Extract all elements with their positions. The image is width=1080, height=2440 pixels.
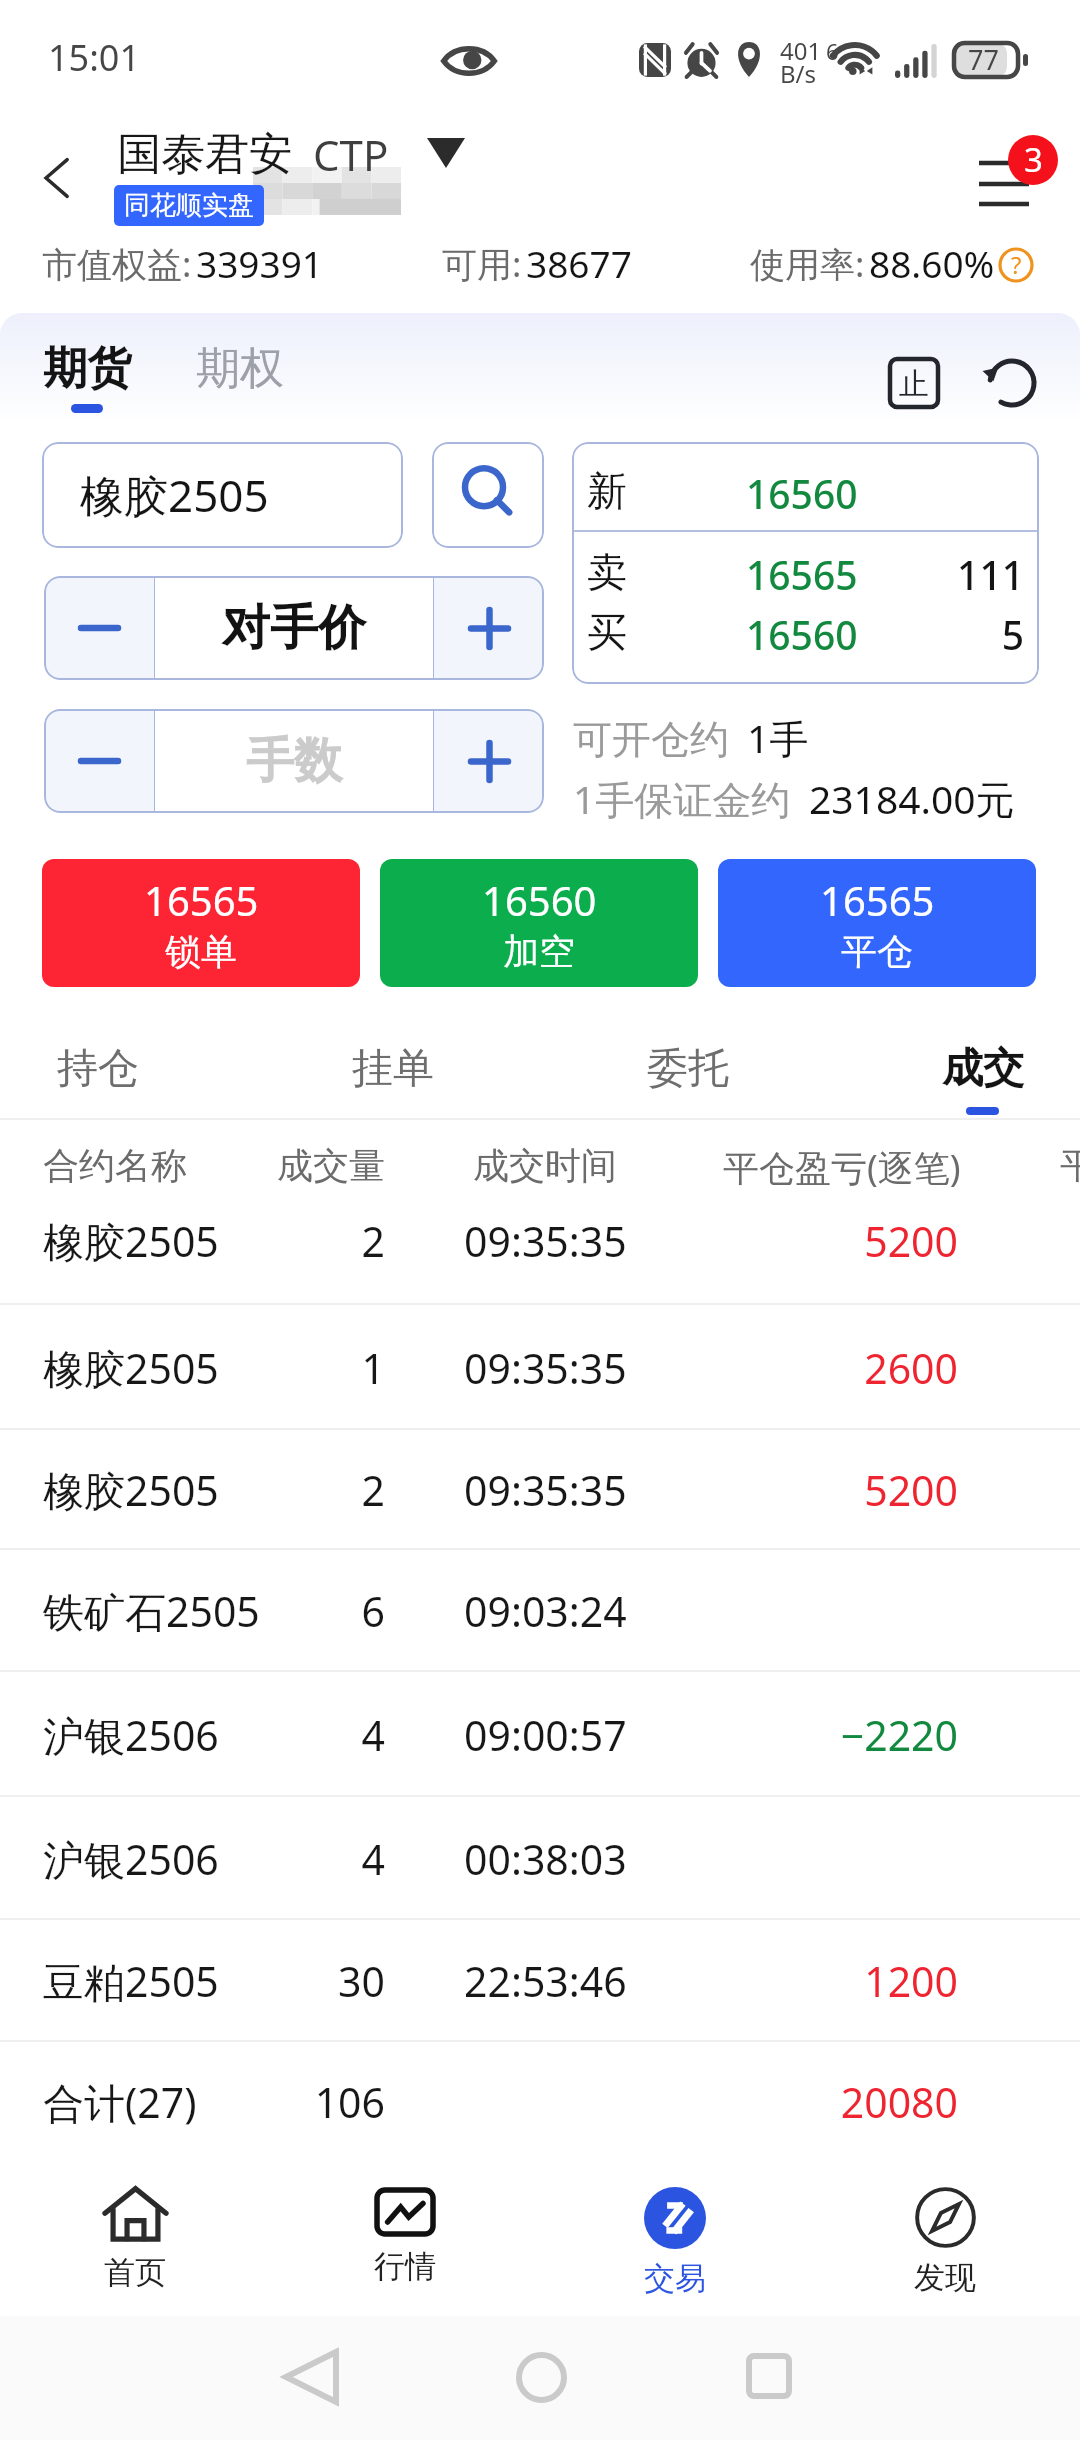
staticText: 2 xyxy=(232,1213,385,1269)
staticText: 23184.00元 xyxy=(809,772,1015,825)
staticText: 平 xyxy=(1060,1143,1080,1188)
staticText: 09:35:35 xyxy=(464,1462,627,1518)
staticText: 09:35:35 xyxy=(464,1213,627,1269)
button[interactable] xyxy=(44,576,154,680)
button[interactable]: Menu xyxy=(960,128,1070,220)
button[interactable]: 铁矿石2505 xyxy=(0,1550,1080,1672)
staticText: 新 xyxy=(587,466,627,516)
staticText: 成交 xyxy=(942,1043,1024,1095)
staticText: 持仓 xyxy=(57,1043,139,1095)
staticText: 橡胶2505 xyxy=(43,1213,219,1269)
staticText: 1200 xyxy=(700,1953,958,2009)
button[interactable]: 行情 xyxy=(270,2157,540,2316)
button[interactable]: 手数 xyxy=(155,709,433,813)
button[interactable]: 16560 xyxy=(380,859,698,987)
staticText: 成交量 xyxy=(277,1143,385,1188)
staticText: 可用: xyxy=(442,240,522,288)
staticText: CTP xyxy=(313,126,389,183)
staticText: 沪银2506 xyxy=(43,1707,219,1763)
staticText: 16560 xyxy=(746,608,858,661)
staticText: 4 xyxy=(232,1831,385,1887)
staticText: 手数 xyxy=(246,731,342,791)
button[interactable]: Refresh xyxy=(980,351,1044,415)
staticText: 卖 xyxy=(587,547,627,597)
button[interactable] xyxy=(44,709,154,813)
button[interactable]: 挂单 xyxy=(295,1018,490,1120)
staticText: 合约名称 xyxy=(43,1143,187,1188)
button[interactable]: 橡胶2505 xyxy=(0,1207,1080,1305)
button[interactable]: 橡胶2505 xyxy=(42,442,403,548)
staticText: 可开仓约 xyxy=(573,715,729,764)
button[interactable] xyxy=(434,576,544,680)
button[interactable]: 首页 xyxy=(0,2157,270,2316)
staticText: 16560 xyxy=(746,467,858,520)
staticText: 沪银2506 xyxy=(43,1831,219,1887)
staticText: 1 xyxy=(232,1340,385,1396)
staticText: 豆粕2505 xyxy=(43,1953,219,2009)
staticText: 1手 xyxy=(747,711,809,764)
staticText: ? xyxy=(1011,248,1022,281)
button[interactable]: Stop order xyxy=(886,355,942,411)
staticText: 首页 xyxy=(104,2253,166,2292)
button[interactable]: 16565 xyxy=(718,859,1036,987)
staticText: 买 xyxy=(587,607,627,657)
button[interactable]: 沪银2506 xyxy=(0,1672,1080,1797)
staticText: 106 xyxy=(232,2074,385,2130)
staticText: 2 xyxy=(232,1462,385,1518)
button[interactable]: 合计(27) xyxy=(0,2042,1080,2162)
staticText: 6 xyxy=(826,36,839,66)
staticText: 339391 xyxy=(196,238,323,288)
staticText: 3 xyxy=(1024,137,1043,182)
staticText: 5 xyxy=(572,608,1024,661)
button[interactable]: 期货 xyxy=(43,341,131,413)
staticText: 16565 xyxy=(746,548,858,601)
staticText: 16565 xyxy=(820,873,935,927)
staticText: 401 xyxy=(780,34,822,67)
button[interactable]: 橡胶2505 xyxy=(0,1305,1080,1430)
button[interactable]: 对手价 xyxy=(155,576,433,680)
staticText: 橡胶2505 xyxy=(80,465,269,525)
staticText: 合计(27) xyxy=(43,2074,197,2130)
button[interactable]: 持仓 xyxy=(0,1018,195,1120)
staticText: 橡胶2505 xyxy=(43,1462,219,1518)
staticText: 09:00:57 xyxy=(464,1707,627,1763)
staticText: 88.60% xyxy=(869,238,995,288)
button[interactable] xyxy=(434,709,544,813)
button[interactable]: 16565 xyxy=(42,859,360,987)
staticText: 挂单 xyxy=(352,1043,434,1095)
button[interactable]: Back xyxy=(18,138,98,218)
staticText: 15:01 xyxy=(48,33,141,82)
staticText: −2220 xyxy=(700,1707,958,1763)
staticText: 加空 xyxy=(503,929,575,974)
staticText: 期权 xyxy=(196,341,284,396)
staticText: 平仓 xyxy=(841,929,913,974)
staticText: 交易 xyxy=(644,2259,706,2298)
staticText: 00:38:03 xyxy=(464,1831,627,1887)
button[interactable]: 委托 xyxy=(590,1018,785,1120)
staticText: 使用率: xyxy=(750,240,865,288)
button[interactable]: Search xyxy=(432,442,544,548)
staticText: 09:03:24 xyxy=(464,1583,627,1639)
button[interactable]: 豆粕2505 xyxy=(0,1920,1080,2042)
staticText: 77 xyxy=(968,41,999,78)
staticText: 4 xyxy=(232,1707,385,1763)
staticText: 平仓盈亏(逐笔) xyxy=(723,1143,961,1192)
staticText: 16565 xyxy=(144,873,259,927)
button[interactable]: 成交 xyxy=(885,1018,1080,1120)
button[interactable]: 沪银2506 xyxy=(0,1797,1080,1920)
button[interactable]: 交易 xyxy=(540,2157,810,2316)
staticText: 止 xyxy=(899,365,929,403)
staticText: 20080 xyxy=(700,2074,958,2130)
staticText: 期货 xyxy=(43,341,131,396)
button[interactable]: 橡胶2505 xyxy=(0,1430,1080,1550)
staticText: 30 xyxy=(232,1953,385,2009)
staticText: 市值权益: xyxy=(42,240,192,288)
staticText: 铁矿石2505 xyxy=(43,1583,260,1639)
button[interactable]: 发现 xyxy=(810,2157,1080,2316)
staticText: 38677 xyxy=(526,238,632,288)
staticText: 发现 xyxy=(914,2258,976,2297)
staticText: 16560 xyxy=(482,873,597,927)
button[interactable]: 期权 xyxy=(196,341,284,396)
staticText: 同花顺实盘 xyxy=(124,189,254,222)
